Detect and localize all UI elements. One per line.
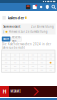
button[interactable]: Site icon xyxy=(25,3,31,11)
staticText: KW xyxy=(14,69,16,71)
staticText: KW xyxy=(5,69,7,71)
staticText: KW xyxy=(14,62,16,64)
staticText: H xyxy=(2,88,6,95)
button[interactable]: Feiertage xyxy=(12,36,21,41)
button[interactable]: Search xyxy=(50,3,57,11)
button[interactable]: Account xyxy=(38,3,44,11)
staticText: KW xyxy=(5,62,7,64)
button[interactable]: H xyxy=(0,86,57,97)
staticText: KW xyxy=(41,62,43,64)
button[interactable]: Privacy xyxy=(44,3,50,11)
staticText: KW xyxy=(23,62,25,64)
staticText: Hinweis zur Zeitumstellung xyxy=(9,30,48,33)
staticText: Feiertage xyxy=(12,35,21,43)
button[interactable]: Tabs xyxy=(31,3,38,11)
staticText: Die Kalenderwochen 2024 in der Jahresueb… xyxy=(2,42,51,50)
button[interactable]: Start xyxy=(2,36,10,41)
staticText: KW xyxy=(41,69,43,71)
staticText: KW xyxy=(23,69,25,71)
staticText: KW xyxy=(32,62,34,64)
staticText: Start xyxy=(3,37,9,41)
staticText: MIAMI xyxy=(11,90,21,93)
staticText: Sommerzeit xyxy=(3,25,20,28)
staticText: Zur Anmeldung xyxy=(31,25,54,28)
staticText: kalender xyxy=(8,15,25,20)
staticText: KW xyxy=(32,69,34,71)
staticText: KW xyxy=(50,66,52,67)
staticText: KW xyxy=(50,69,52,71)
